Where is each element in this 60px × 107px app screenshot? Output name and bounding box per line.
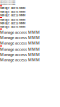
staticText: Manage access MMM (0, 0, 15, 2)
staticText: Manage access MMM (0, 6, 25, 10)
staticText: Manage access MMM (0, 18, 25, 21)
staticText: Manage access MMM (0, 25, 25, 28)
staticText: Manage access MMM (0, 2, 15, 4)
staticText: Manage access MMM (0, 3, 15, 5)
staticText: Manage access MMM (0, 10, 25, 13)
staticText: Manage access MMM (0, 46, 40, 52)
staticText: Manage access MMM (0, 35, 40, 40)
staticText: Manage access MMM (0, 57, 40, 62)
staticText: Manage access MMM (0, 40, 40, 45)
staticText: Manage access MMM (0, 21, 25, 25)
staticText: Manage access MMM (0, 13, 25, 17)
staticText: Manage access MMM (0, 30, 40, 35)
staticText: Manage access MMM (0, 52, 40, 57)
